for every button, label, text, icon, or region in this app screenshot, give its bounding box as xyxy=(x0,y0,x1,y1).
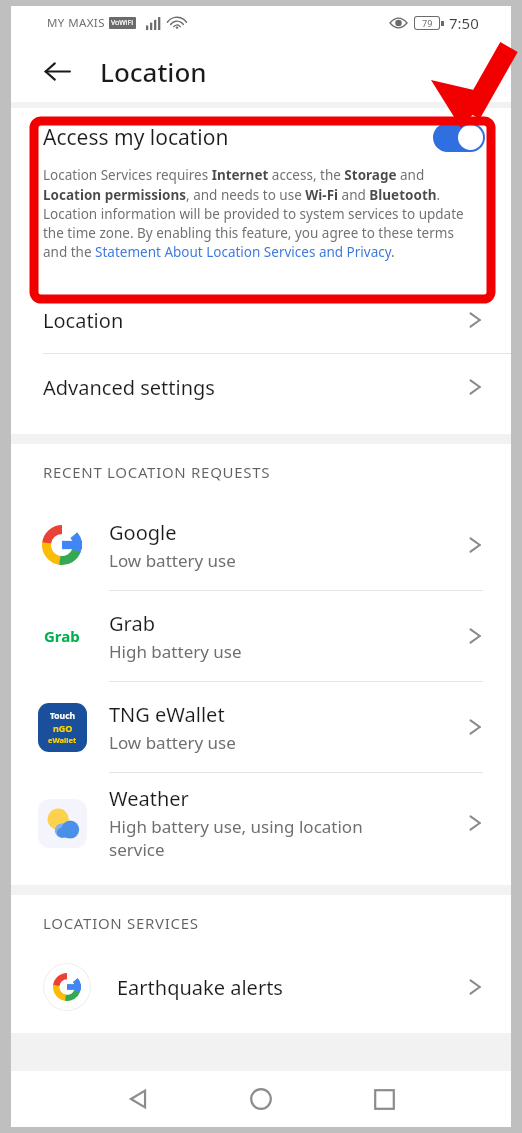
staticText: Grab xyxy=(44,626,80,646)
button[interactable]: Touch xyxy=(11,682,511,772)
staticText: 79 xyxy=(422,17,433,29)
staticText: High battery use, using location xyxy=(109,815,363,838)
staticText: eWallet xyxy=(48,735,77,745)
staticText: MY MAXIS xyxy=(47,15,105,31)
staticText: Earthquake alerts xyxy=(117,974,283,1001)
button[interactable]: Access my location toggle xyxy=(433,123,485,152)
button[interactable]: Access my location xyxy=(11,108,511,166)
staticText: Google xyxy=(109,519,177,546)
staticText: Location Services requires Internet acce… xyxy=(43,166,481,261)
staticText: LOCATION SERVICES xyxy=(43,913,199,933)
staticText: service xyxy=(109,838,165,861)
button[interactable]: Home xyxy=(234,1072,288,1126)
staticText: High battery use xyxy=(109,640,242,663)
staticText: TNG eWallet xyxy=(109,701,225,728)
staticText: Touch xyxy=(50,710,76,722)
button[interactable]: Weather xyxy=(11,773,511,873)
button[interactable]: Grab xyxy=(11,591,511,681)
button[interactable]: Back xyxy=(111,1072,165,1126)
staticText: Low battery use xyxy=(109,731,236,754)
staticText: VoWiFi xyxy=(111,18,134,28)
staticText: nGO xyxy=(53,722,73,734)
staticText: Location xyxy=(43,307,124,334)
staticText: Low battery use xyxy=(109,549,236,572)
button[interactable]: Google xyxy=(11,500,511,590)
staticText: RECENT LOCATION REQUESTS xyxy=(43,462,271,482)
staticText: Advanced settings xyxy=(43,374,215,401)
staticText: 7:50 xyxy=(449,13,479,33)
button[interactable]: Location xyxy=(11,287,511,353)
button[interactable]: Recent apps xyxy=(357,1072,411,1126)
staticText: Access my location xyxy=(43,123,229,152)
staticText: Weather xyxy=(109,785,189,812)
staticText: Location xyxy=(100,54,207,89)
button[interactable]: Back xyxy=(35,49,79,93)
button[interactable]: Earthquake alerts xyxy=(11,951,511,1023)
button[interactable]: Advanced settings xyxy=(11,354,511,420)
staticText: Grab xyxy=(109,610,155,637)
